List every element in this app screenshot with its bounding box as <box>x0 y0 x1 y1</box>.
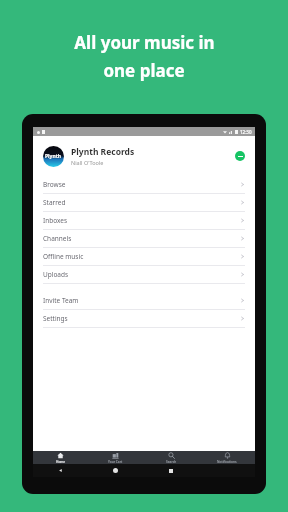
button[interactable]: Offline music <box>33 248 255 265</box>
staticText: Plynth <box>45 153 62 160</box>
button[interactable]: Settings <box>33 310 255 327</box>
staticText: All your music in <box>74 31 215 54</box>
staticText: Search <box>166 460 177 464</box>
staticText: Notifications <box>217 460 237 464</box>
button[interactable]: Notifications <box>199 451 255 464</box>
button[interactable]: Channels <box>33 230 255 247</box>
button[interactable]: Starred <box>33 194 255 211</box>
staticText: Browse <box>43 180 66 189</box>
button[interactable]: Your Cart <box>88 451 143 464</box>
staticText: 12:30 <box>240 129 252 135</box>
staticText: Niall O'Toole <box>71 159 104 166</box>
staticText: Settings <box>43 314 68 323</box>
staticText: Your Cart <box>108 460 123 464</box>
button[interactable]: Back <box>33 464 88 477</box>
button[interactable]: Account status <box>235 151 245 161</box>
staticText: Offline music <box>43 252 84 261</box>
staticText: Plynth Records <box>71 146 135 158</box>
staticText: Uploads <box>43 270 69 279</box>
button[interactable]: Home <box>88 464 143 477</box>
button[interactable]: Invite Team <box>33 292 255 309</box>
button[interactable]: Uploads <box>33 266 255 283</box>
staticText: Inboxes <box>43 216 68 225</box>
button[interactable]: Search <box>143 451 199 464</box>
button[interactable]: Plynth <box>33 136 255 176</box>
button[interactable]: Home <box>33 451 88 464</box>
button[interactable]: Browse <box>33 176 255 193</box>
staticText: one place <box>103 59 185 82</box>
staticText: Channels <box>43 234 72 243</box>
button[interactable]: Recents <box>143 464 199 477</box>
staticText: Invite Team <box>43 296 79 305</box>
staticText: Home <box>56 460 66 464</box>
staticText: Starred <box>43 198 66 207</box>
button[interactable]: Inboxes <box>33 212 255 229</box>
